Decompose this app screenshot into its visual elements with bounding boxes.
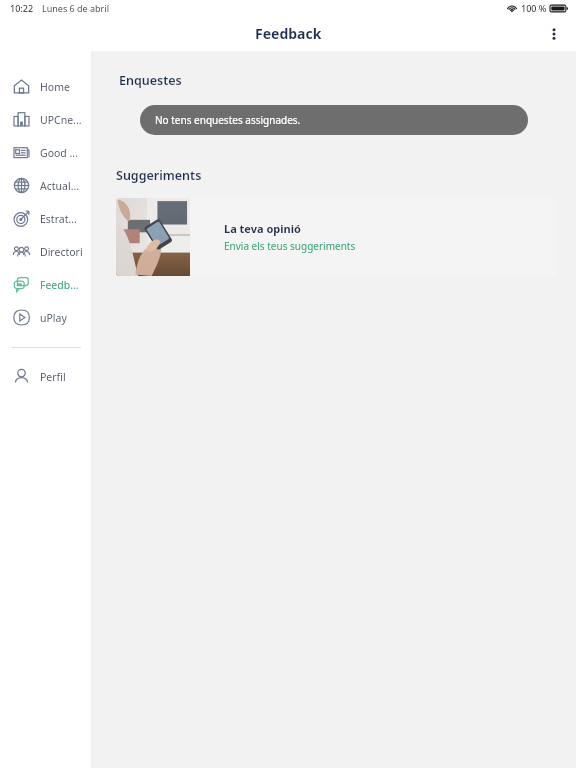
button[interactable]: Good ... bbox=[0, 136, 93, 169]
button[interactable]: Home bbox=[0, 70, 93, 103]
staticText: Perfil bbox=[40, 370, 66, 384]
button[interactable]: Actual... bbox=[0, 169, 93, 202]
button[interactable]: Estrat... bbox=[0, 202, 93, 235]
button[interactable]: Feedb... bbox=[0, 268, 93, 301]
staticText: No tens enquestes assignades. bbox=[155, 113, 301, 127]
button[interactable]: Directori bbox=[0, 235, 93, 268]
staticText: Lunes 6 de abril bbox=[42, 2, 109, 14]
staticText: 10:22 bbox=[10, 2, 34, 14]
staticText: Good ... bbox=[40, 146, 78, 160]
button[interactable]: uPlay bbox=[0, 301, 93, 334]
staticText: Home bbox=[40, 80, 70, 94]
button[interactable]: UPCne... bbox=[0, 103, 93, 136]
button[interactable]: La teva opinió bbox=[116, 198, 556, 276]
staticText: 100 % bbox=[521, 2, 547, 14]
staticText: La teva opinió bbox=[224, 221, 301, 236]
button[interactable]: More options bbox=[538, 18, 570, 50]
staticText: Enquestes bbox=[119, 72, 182, 89]
staticText: Feedback bbox=[255, 24, 322, 43]
staticText: Actual... bbox=[40, 179, 80, 193]
staticText: uPlay bbox=[40, 311, 67, 325]
staticText: Estrat... bbox=[40, 212, 77, 226]
staticText: Envia els teus suggeriments bbox=[224, 239, 356, 253]
staticText: UPCne... bbox=[40, 113, 82, 127]
staticText: Directori bbox=[40, 245, 83, 259]
staticText: Suggeriments bbox=[116, 167, 202, 184]
staticText: Feedb... bbox=[40, 278, 79, 292]
button[interactable]: Perfil bbox=[0, 360, 93, 393]
button[interactable]: No tens enquestes assignades. bbox=[140, 105, 528, 135]
